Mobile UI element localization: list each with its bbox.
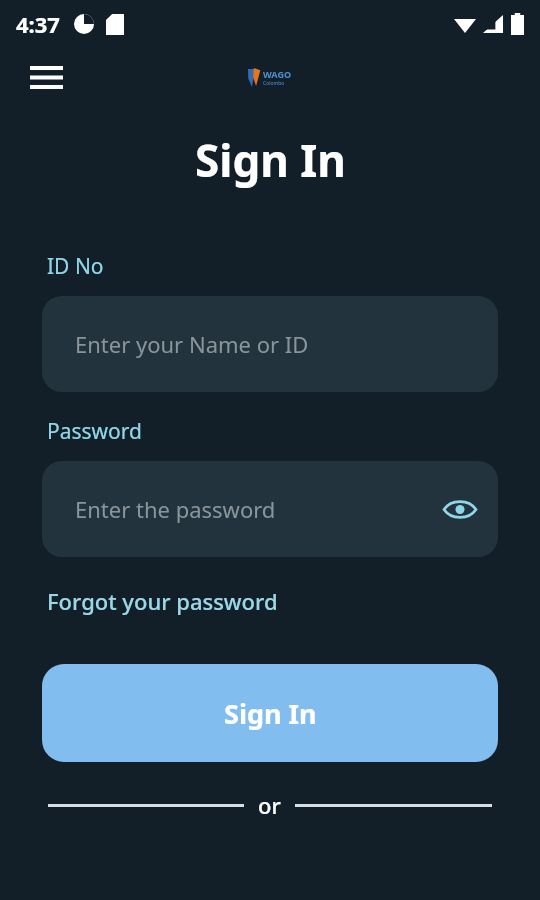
staticText: 4:37	[16, 9, 60, 39]
button[interactable]: Enter your Name or ID	[42, 296, 498, 392]
staticText: Enter the password	[75, 494, 276, 524]
staticText: Sign In	[195, 130, 346, 190]
staticText: Sign In	[224, 695, 317, 732]
button[interactable]: Menu	[24, 55, 68, 99]
button[interactable]: Enter the password	[42, 461, 498, 557]
staticText: Forgot your password	[47, 586, 278, 616]
staticText: or	[258, 790, 281, 820]
staticText: Password	[47, 417, 142, 446]
button[interactable]: Forgot your password	[42, 582, 283, 620]
staticText: Enter your Name or ID	[75, 329, 309, 359]
button[interactable]: Show password	[436, 485, 484, 533]
staticText: WAGO	[263, 68, 292, 80]
button[interactable]: Sign In	[42, 664, 498, 762]
staticText: ID No	[47, 252, 104, 281]
staticText: Colombo	[263, 80, 285, 87]
